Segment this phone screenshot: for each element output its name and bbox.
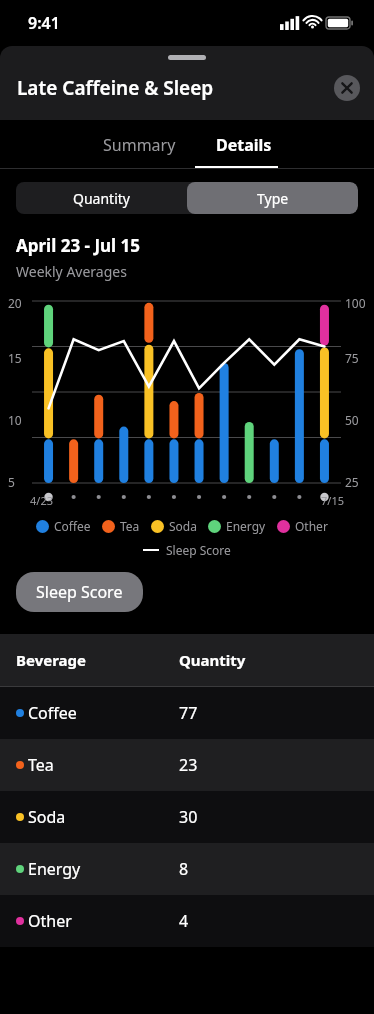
button[interactable]: Details [196,122,292,168]
button[interactable]: Sleep Score [16,572,143,612]
button[interactable]: Close [334,75,360,101]
staticText: Sleep Score [36,581,123,603]
button[interactable]: Other [0,895,374,947]
staticText: 23 [179,754,358,776]
staticText: April 23 - Jul 15 [16,234,141,257]
staticText: Late Caffeine & Sleep [17,75,214,101]
staticText: Details [216,134,272,156]
button[interactable]: Quantity [16,182,187,214]
button[interactable]: Soda [0,791,374,843]
staticText: 7/15 [321,493,344,508]
staticText: Quantity [179,650,358,670]
staticText: 20 [8,295,22,311]
staticText: Coffee [54,518,91,534]
staticText: 77 [179,702,358,724]
staticText: Beverage [16,650,179,670]
button[interactable]: Tea [0,739,374,791]
button[interactable]: Energy [0,843,374,895]
staticText: Soda [28,806,66,828]
button[interactable]: Coffee [0,687,374,739]
staticText: Energy [28,858,81,880]
staticText: Tea [28,754,54,776]
staticText: 4 [179,910,358,932]
staticText: Tea [120,518,140,534]
staticText: Sleep Score [166,542,231,558]
staticText: Weekly Averages [16,262,127,281]
staticText: Summary [103,134,176,156]
staticText: 10 [8,412,22,428]
staticText: Type [257,189,289,208]
staticText: 75 [345,350,359,366]
staticText: Quantity [73,189,130,208]
staticText: 30 [179,806,358,828]
staticText: 5 [8,474,15,490]
staticText: 100 [345,295,366,311]
button[interactable]: Summary [83,122,196,168]
staticText: 8 [179,858,358,880]
staticText: Other [295,518,328,534]
staticText: 9:41 [28,12,60,34]
staticText: 50 [345,412,359,428]
staticText: 25 [345,474,359,490]
staticText: Soda [169,518,197,534]
staticText: Energy [226,518,266,534]
staticText: Coffee [28,702,77,724]
staticText: 15 [8,350,22,366]
staticText: Other [28,910,72,932]
staticText: 4/23 [30,493,53,508]
button[interactable]: Type [187,182,358,214]
